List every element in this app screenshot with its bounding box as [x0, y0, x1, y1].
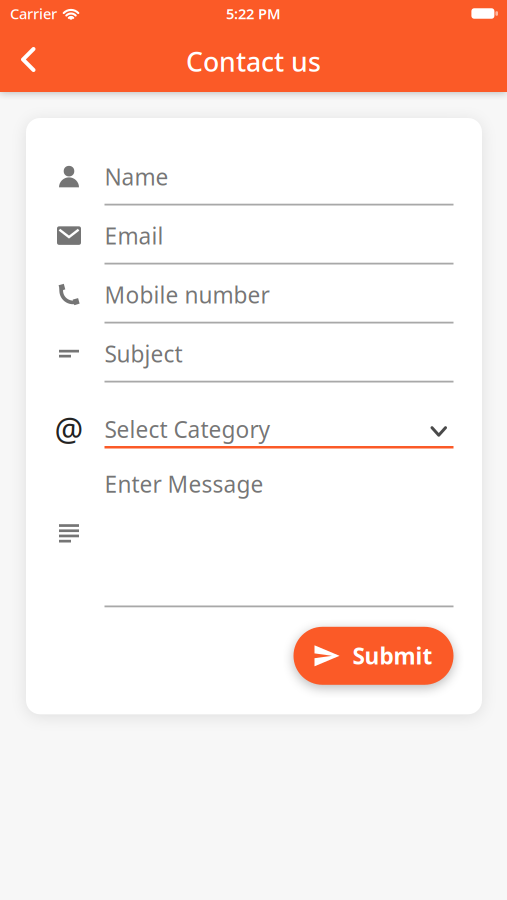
- button[interactable]: @: [57, 382, 453, 448]
- staticText: Mobile number: [104, 279, 269, 310]
- staticText: Name: [104, 161, 168, 192]
- staticText: Submit: [352, 641, 432, 671]
- staticText: Select Category: [104, 414, 270, 444]
- button[interactable]: Enter Message: [57, 448, 453, 607]
- button[interactable]: Mobile number: [57, 264, 453, 323]
- button[interactable]: Subject: [57, 323, 453, 382]
- staticText: Contact us: [186, 44, 321, 79]
- button[interactable]: Submit: [293, 627, 453, 685]
- button[interactable]: Email: [57, 205, 453, 264]
- button[interactable]: Back: [0, 32, 33, 87]
- staticText: @: [54, 408, 83, 450]
- staticText: Subject: [104, 338, 182, 369]
- staticText: 5:22 PM: [226, 4, 281, 23]
- staticText: Carrier: [10, 4, 57, 23]
- staticText: Email: [104, 220, 163, 251]
- button[interactable]: Name: [57, 146, 453, 205]
- staticText: Enter Message: [104, 469, 263, 499]
